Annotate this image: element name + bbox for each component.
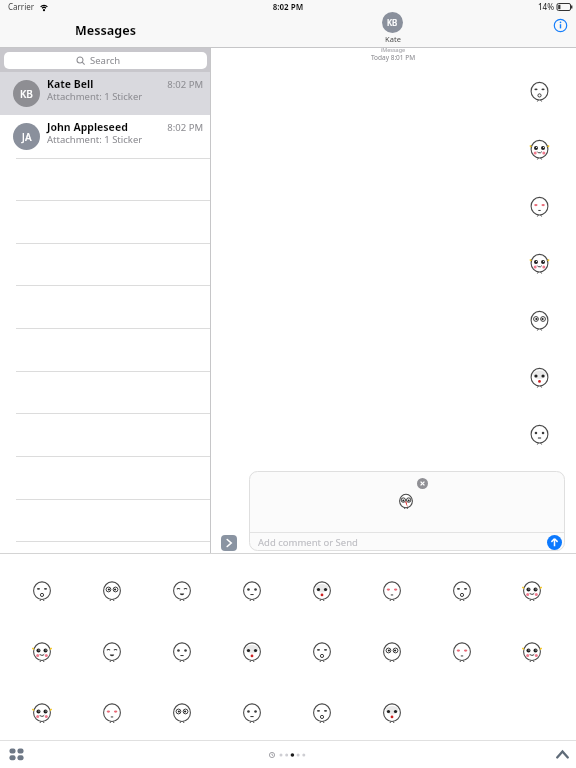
button[interactable] (98, 639, 126, 667)
button[interactable] (518, 578, 546, 606)
button[interactable] (221, 535, 237, 551)
button[interactable] (378, 639, 406, 667)
button[interactable] (0, 72, 211, 115)
button[interactable] (518, 639, 546, 667)
button[interactable] (417, 478, 428, 489)
button[interactable] (28, 639, 56, 667)
button[interactable] (28, 578, 56, 606)
button[interactable] (98, 578, 126, 606)
staticText: Today 8:01 PM (333, 53, 453, 62)
staticText: JA (22, 130, 32, 144)
button[interactable] (378, 578, 406, 606)
button[interactable] (552, 17, 569, 34)
staticText: Attachment: 1 Sticker (47, 90, 143, 103)
staticText: KB (387, 17, 398, 28)
staticText: John Appleseed (47, 120, 128, 134)
button[interactable]: Search (4, 52, 207, 69)
button[interactable] (308, 578, 336, 606)
staticText: Kate (363, 34, 423, 44)
staticText: 8:02 PM (262, 1, 314, 12)
staticText: 8:02 PM (150, 78, 203, 91)
staticText: Kate Bell (47, 77, 94, 91)
button[interactable] (553, 746, 572, 762)
staticText: Attachment: 1 Sticker (47, 133, 143, 146)
button[interactable] (547, 535, 562, 550)
button[interactable] (168, 700, 196, 728)
button[interactable] (238, 700, 266, 728)
button[interactable] (448, 578, 476, 606)
button[interactable] (238, 578, 266, 606)
button[interactable] (308, 700, 336, 728)
staticText: Messages (0, 22, 211, 39)
button[interactable] (168, 578, 196, 606)
staticText: Search (90, 54, 121, 67)
button[interactable] (0, 115, 211, 158)
button[interactable]: KB (382, 12, 403, 33)
button[interactable] (308, 639, 336, 667)
button[interactable] (8, 747, 25, 762)
button[interactable] (28, 700, 56, 728)
staticText: 8:02 PM (150, 121, 203, 134)
button[interactable] (238, 639, 266, 667)
button[interactable] (378, 700, 406, 728)
staticText: iMessage (333, 46, 453, 53)
staticText: KB (20, 87, 33, 101)
button[interactable] (98, 700, 126, 728)
button[interactable] (448, 639, 476, 667)
staticText: Add comment or Send (258, 536, 358, 549)
button[interactable] (168, 639, 196, 667)
staticText: 14% (538, 1, 554, 12)
staticText: Carrier (8, 1, 35, 12)
